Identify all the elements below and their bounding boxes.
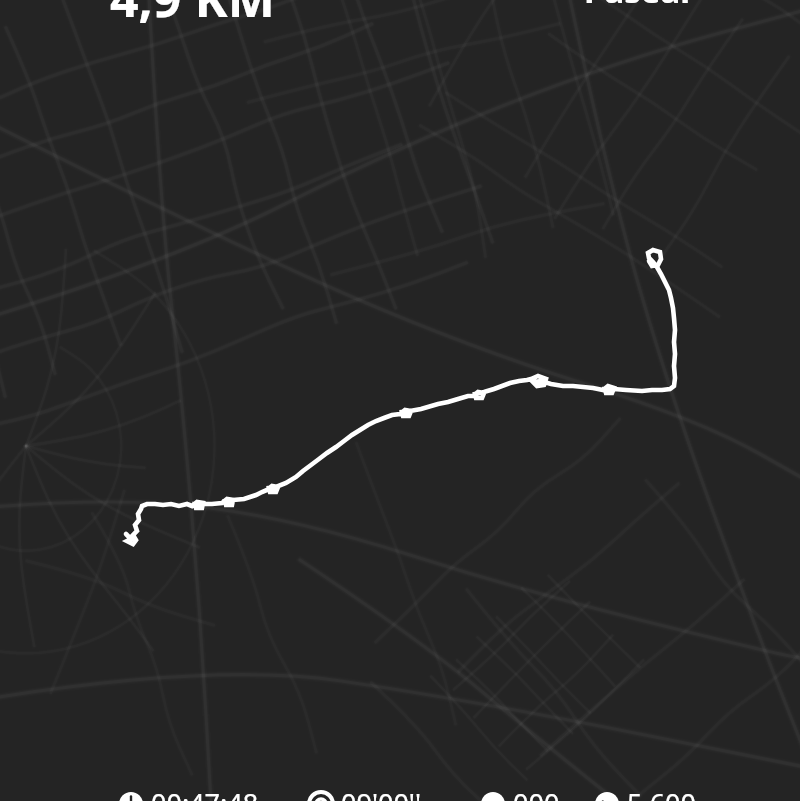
staticText: 000 [513, 785, 560, 801]
button[interactable]: Route map [0, 0, 800, 801]
staticText: 09'00'' [341, 785, 422, 801]
button[interactable]: Average pace 09'00'' [309, 785, 422, 801]
staticText: 00:47:48 [151, 785, 259, 801]
staticText: 4,9 KM [110, 0, 275, 32]
button[interactable]: Calories 000 [481, 785, 560, 801]
staticText: 5.600 [627, 785, 697, 801]
staticText: Pasear [584, 0, 696, 13]
button[interactable]: Steps 5.600 [595, 785, 697, 801]
button[interactable]: Duration 00:47:48 [119, 785, 259, 801]
